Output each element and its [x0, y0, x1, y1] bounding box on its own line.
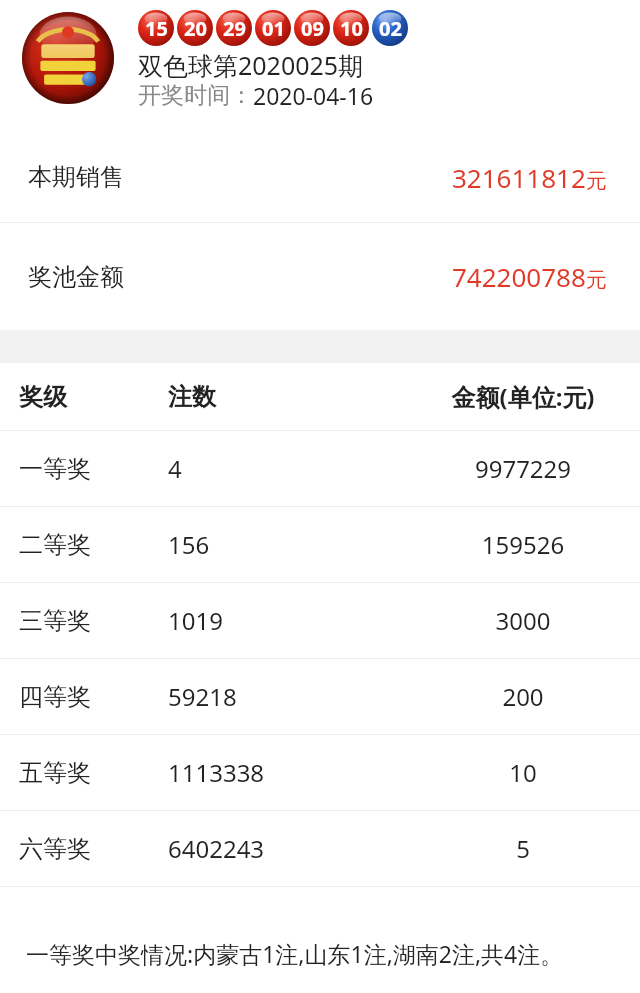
staticText: 奖级	[19, 382, 67, 412]
staticText: 金额(单位:元)	[413, 380, 633, 413]
staticText: 321611812	[452, 160, 586, 195]
staticText: 4	[168, 452, 182, 485]
staticText: 奖池金额	[28, 262, 124, 292]
button[interactable]: 五等奖	[0, 735, 640, 810]
button[interactable]: 三等奖	[0, 583, 640, 658]
staticText: 一等奖	[19, 454, 91, 484]
staticText: 六等奖	[19, 834, 91, 864]
staticText: 元	[586, 168, 607, 194]
staticText: 742200788	[452, 259, 586, 294]
staticText: 9977229	[413, 452, 633, 485]
staticText: 3000	[413, 604, 633, 637]
button[interactable]: 六等奖	[0, 811, 640, 886]
staticText: 01	[262, 15, 285, 42]
staticText: 注数	[168, 382, 216, 412]
staticText: 1113338	[168, 756, 265, 789]
staticText: 200	[413, 680, 633, 713]
button[interactable]: 奖池金额	[0, 223, 640, 330]
staticText: 156	[168, 528, 210, 561]
button[interactable]: 奖级	[0, 363, 640, 430]
staticText: 三等奖	[19, 606, 91, 636]
button[interactable]: 一等奖	[0, 431, 640, 506]
staticText: 二等奖	[19, 530, 91, 560]
staticText: 29	[223, 15, 246, 42]
staticText: 10	[413, 756, 633, 789]
staticText: 02	[379, 15, 402, 42]
staticText: 1019	[168, 604, 223, 637]
staticText: 20	[184, 15, 207, 42]
staticText: 59218	[168, 680, 237, 713]
staticText: 五等奖	[19, 758, 91, 788]
staticText: 6402243	[168, 832, 265, 865]
staticText: 5	[413, 832, 633, 865]
staticText: 四等奖	[19, 682, 91, 712]
button[interactable]: 双色球 Union Lotto logo	[22, 12, 114, 104]
staticText: 双色球第2020025期	[138, 48, 364, 82]
staticText: 10	[340, 15, 363, 42]
staticText: 一等奖中奖情况:内蒙古1注,山东1注,湖南2注,共4注。	[26, 938, 564, 969]
staticText: 15	[145, 15, 168, 42]
button[interactable]: 四等奖	[0, 659, 640, 734]
staticText: 159526	[413, 528, 633, 561]
staticText: 09	[301, 15, 324, 42]
staticText: 开奖时间：	[138, 81, 253, 110]
button[interactable]: 本期销售	[0, 132, 640, 222]
staticText: 本期销售	[28, 162, 124, 192]
staticText: 元	[586, 267, 607, 293]
button[interactable]: 二等奖	[0, 507, 640, 582]
staticText: 2020-04-16	[253, 80, 374, 111]
